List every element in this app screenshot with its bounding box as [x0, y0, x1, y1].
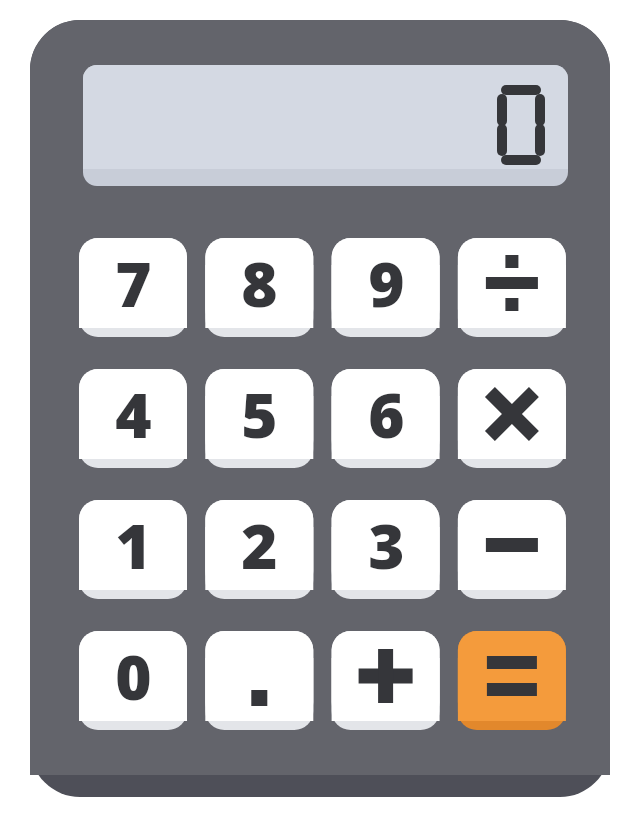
button[interactable]: Minus [458, 500, 566, 599]
staticText: 8 [241, 241, 278, 325]
button[interactable]: Decimal point [205, 631, 313, 730]
staticText: 7 [115, 241, 152, 325]
button[interactable]: Display, 0 [83, 65, 568, 186]
staticText: 4 [115, 372, 152, 456]
staticText: 2 [241, 503, 278, 587]
button[interactable]: Equals [458, 631, 566, 730]
button[interactable]: Plus [332, 631, 440, 730]
staticText: 0 [115, 634, 152, 718]
button[interactable]: Eight [205, 238, 313, 337]
button[interactable]: Three [332, 500, 440, 599]
staticText: 9 [368, 241, 405, 325]
button[interactable]: Four [79, 369, 187, 468]
button[interactable]: Six [332, 369, 440, 468]
staticText: 6 [368, 372, 405, 456]
button[interactable]: Seven [79, 238, 187, 337]
staticText: 3 [368, 503, 405, 587]
button[interactable]: One [79, 500, 187, 599]
button[interactable]: Divide [458, 238, 566, 337]
button[interactable]: Zero [79, 631, 187, 730]
button[interactable]: Nine [332, 238, 440, 337]
button[interactable]: Two [205, 500, 313, 599]
button[interactable]: Five [205, 369, 313, 468]
staticText: 1 [115, 503, 152, 587]
staticText: 5 [241, 372, 278, 456]
button[interactable]: Multiply [458, 369, 566, 468]
